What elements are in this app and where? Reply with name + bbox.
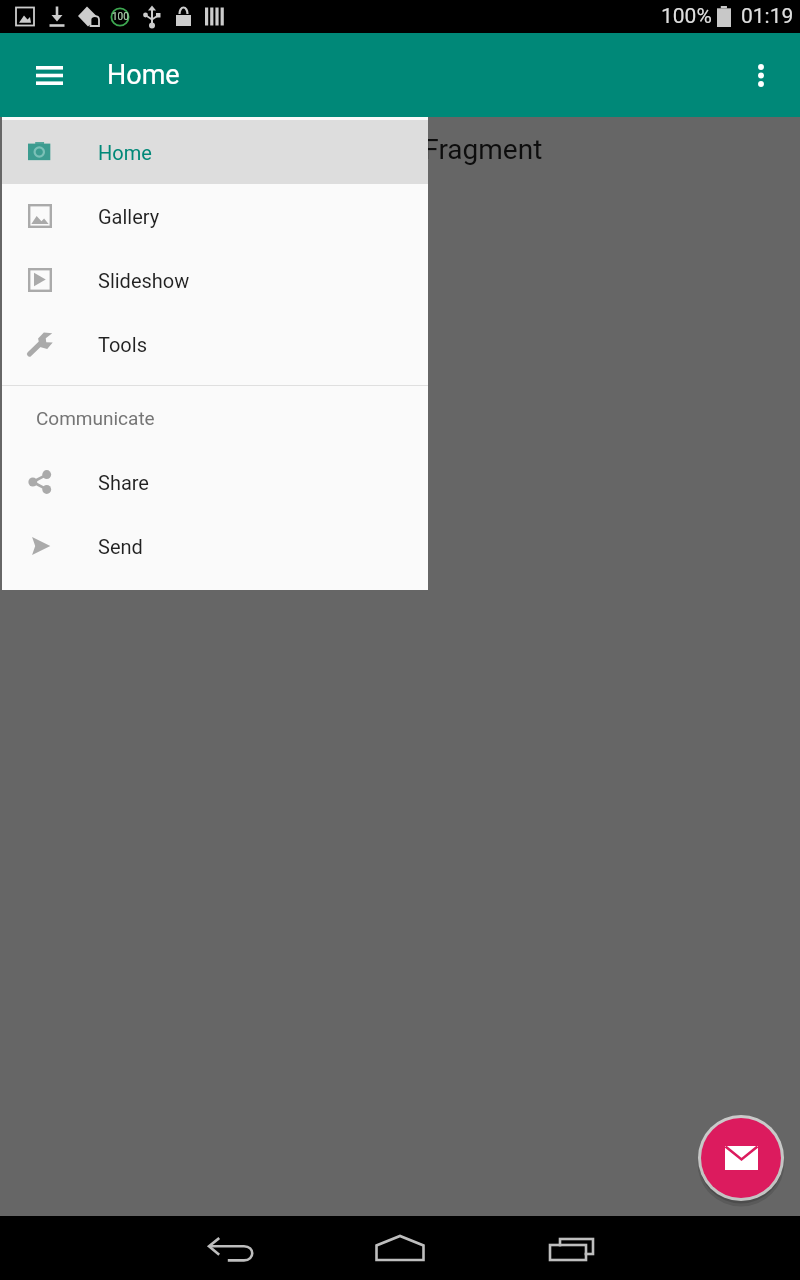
button[interactable]: Share bbox=[2, 450, 428, 514]
staticText: Send bbox=[98, 535, 143, 558]
staticText: 01:19 bbox=[741, 4, 794, 29]
staticText: This is home Fragment bbox=[257, 133, 543, 166]
staticText: Communicate bbox=[36, 407, 155, 429]
staticText: Slideshow bbox=[98, 269, 190, 292]
button[interactable]: Tools bbox=[2, 312, 428, 376]
button[interactable]: Open navigation drawer bbox=[13, 39, 85, 111]
button[interactable]: Slideshow bbox=[2, 248, 428, 312]
button[interactable]: Recent apps bbox=[525, 1216, 617, 1280]
staticText: Gallery bbox=[98, 205, 160, 228]
button[interactable]: Home bbox=[354, 1216, 446, 1280]
button[interactable]: Send email bbox=[701, 1118, 781, 1198]
staticText: 100 bbox=[112, 11, 129, 23]
staticText: Share bbox=[98, 471, 149, 494]
staticText: Home bbox=[98, 141, 152, 164]
button[interactable]: More options bbox=[732, 46, 790, 104]
button[interactable]: Back bbox=[184, 1216, 276, 1280]
button[interactable]: Home bbox=[2, 120, 428, 184]
button[interactable]: Send bbox=[2, 514, 428, 578]
button[interactable]: Gallery bbox=[2, 184, 428, 248]
button[interactable]: Close navigation drawer bbox=[0, 117, 800, 1216]
staticText: Home bbox=[107, 59, 180, 91]
staticText: Tools bbox=[98, 333, 147, 356]
staticText: 100% bbox=[661, 4, 712, 29]
